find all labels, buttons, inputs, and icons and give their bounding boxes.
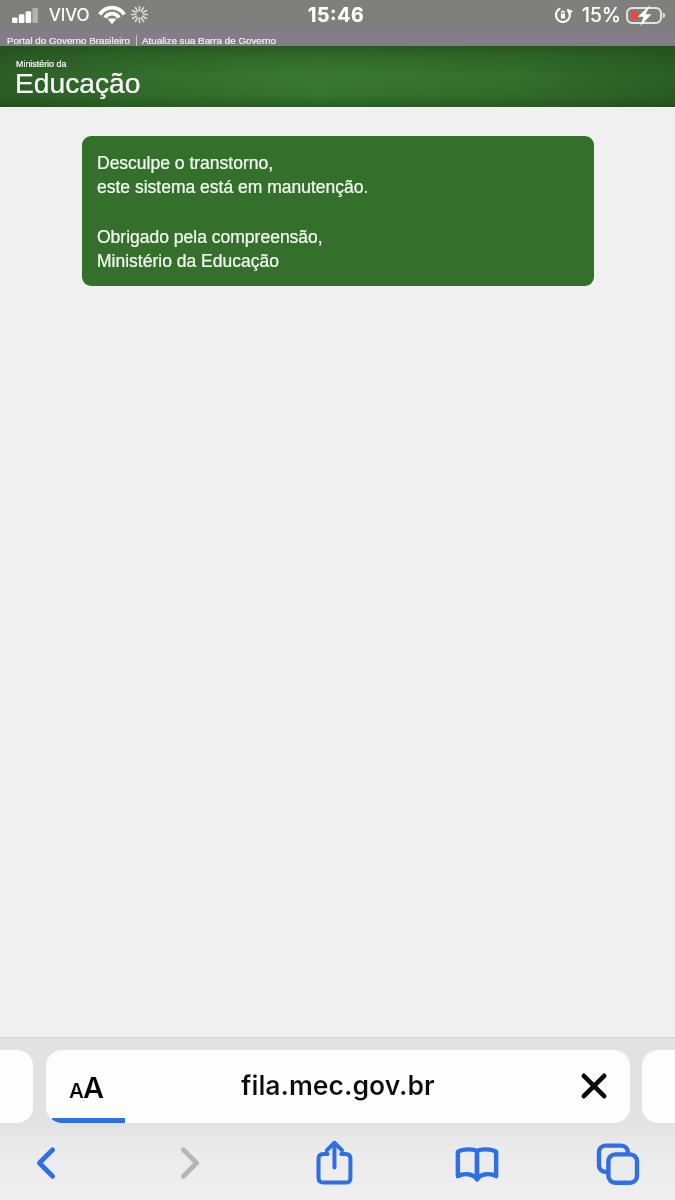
button[interactable]: Back [18,1132,74,1194]
button[interactable]: Atualize sua Barra de Governo [142,35,276,46]
button[interactable]: Previous tab [0,1050,33,1123]
staticText: A [69,1078,84,1103]
staticText: VIVO [49,5,90,26]
button[interactable]: Stop loading [558,1050,630,1123]
button[interactable]: Share [306,1132,362,1194]
staticText: A [83,1070,105,1105]
button[interactable]: Next tab [642,1050,675,1123]
staticText: 15% [582,3,621,27]
button[interactable]: Page settings [46,1050,128,1123]
button[interactable]: Portal do Governo Brasileiro [7,35,131,46]
button[interactable]: Tabs [590,1132,646,1194]
button[interactable]: Bookmarks [449,1132,505,1194]
button[interactable]: Desculpe o transtorno, este sistema está… [82,136,594,286]
staticText: 15:46 [308,3,365,27]
staticText: Desculpe o transtorno, este sistema está… [97,153,369,197]
staticText: Obrigado pela compreensão, Ministério da… [97,227,323,271]
button[interactable]: Page settings [46,1050,630,1123]
button[interactable]: Educação [15,67,141,99]
staticText: fila.mec.gov.br [241,1069,435,1101]
button[interactable]: Forward [162,1132,218,1194]
button[interactable]: Ministério da [16,59,67,69]
